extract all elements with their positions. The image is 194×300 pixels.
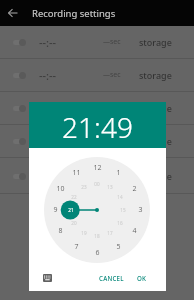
staticText: --:-- xyxy=(39,134,57,149)
staticText: 18 xyxy=(94,233,100,239)
staticText: OK xyxy=(137,274,147,282)
staticText: --:-- xyxy=(39,35,57,50)
button[interactable]: 21 xyxy=(62,108,94,146)
staticText: 13 xyxy=(107,184,113,190)
button[interactable]: 49 xyxy=(101,108,133,146)
staticText: 2 xyxy=(132,184,137,194)
staticText: 22 xyxy=(71,194,77,200)
staticText: 7 xyxy=(74,242,79,252)
staticText: —sec xyxy=(103,136,121,146)
staticText: CANCEL xyxy=(99,274,124,282)
staticText: : xyxy=(94,108,101,146)
button[interactable]: --:-- xyxy=(0,59,194,91)
staticText: 3 xyxy=(138,205,143,215)
staticText: 21 xyxy=(68,207,74,213)
staticText: 00 xyxy=(94,181,100,187)
staticText: storage xyxy=(139,170,172,182)
button[interactable]: --:-- xyxy=(0,125,194,157)
staticText: 19 xyxy=(81,230,87,236)
button[interactable]: Switch to text input mode xyxy=(40,271,54,285)
staticText: 6 xyxy=(95,248,100,258)
staticText: --:-- xyxy=(39,168,57,183)
staticText: 5 xyxy=(116,242,121,252)
staticText: 23 xyxy=(81,184,87,190)
button[interactable]: CANCEL xyxy=(96,270,127,286)
staticText: 12 xyxy=(93,163,102,173)
staticText: 9 xyxy=(53,205,58,215)
staticText: 20 xyxy=(71,220,77,226)
staticText: 10 xyxy=(56,184,65,194)
staticText: 14 xyxy=(117,194,123,200)
staticText: 4 xyxy=(132,226,137,236)
button[interactable]: Navigate up xyxy=(4,4,22,22)
button[interactable]: --:-- xyxy=(0,92,194,124)
staticText: 16 xyxy=(117,220,123,226)
staticText: --:-- xyxy=(39,101,57,116)
staticText: 15 xyxy=(120,207,126,213)
button[interactable]: OK xyxy=(134,270,150,286)
staticText: storage xyxy=(139,36,172,48)
staticText: —sec xyxy=(103,70,121,80)
staticText: storage xyxy=(139,102,172,114)
staticText: storage xyxy=(139,135,172,147)
staticText: 1 xyxy=(116,168,121,178)
staticText: —sec xyxy=(103,171,121,181)
staticText: storage xyxy=(139,69,172,81)
staticText: --:-- xyxy=(39,68,57,83)
staticText: 17 xyxy=(107,230,113,236)
staticText: 11 xyxy=(72,168,81,178)
staticText: 8 xyxy=(58,226,63,236)
staticText: Recording settings xyxy=(32,7,116,20)
staticText: —sec xyxy=(103,37,121,47)
button[interactable]: --:-- xyxy=(0,26,194,58)
button[interactable]: --:-- xyxy=(0,158,194,193)
